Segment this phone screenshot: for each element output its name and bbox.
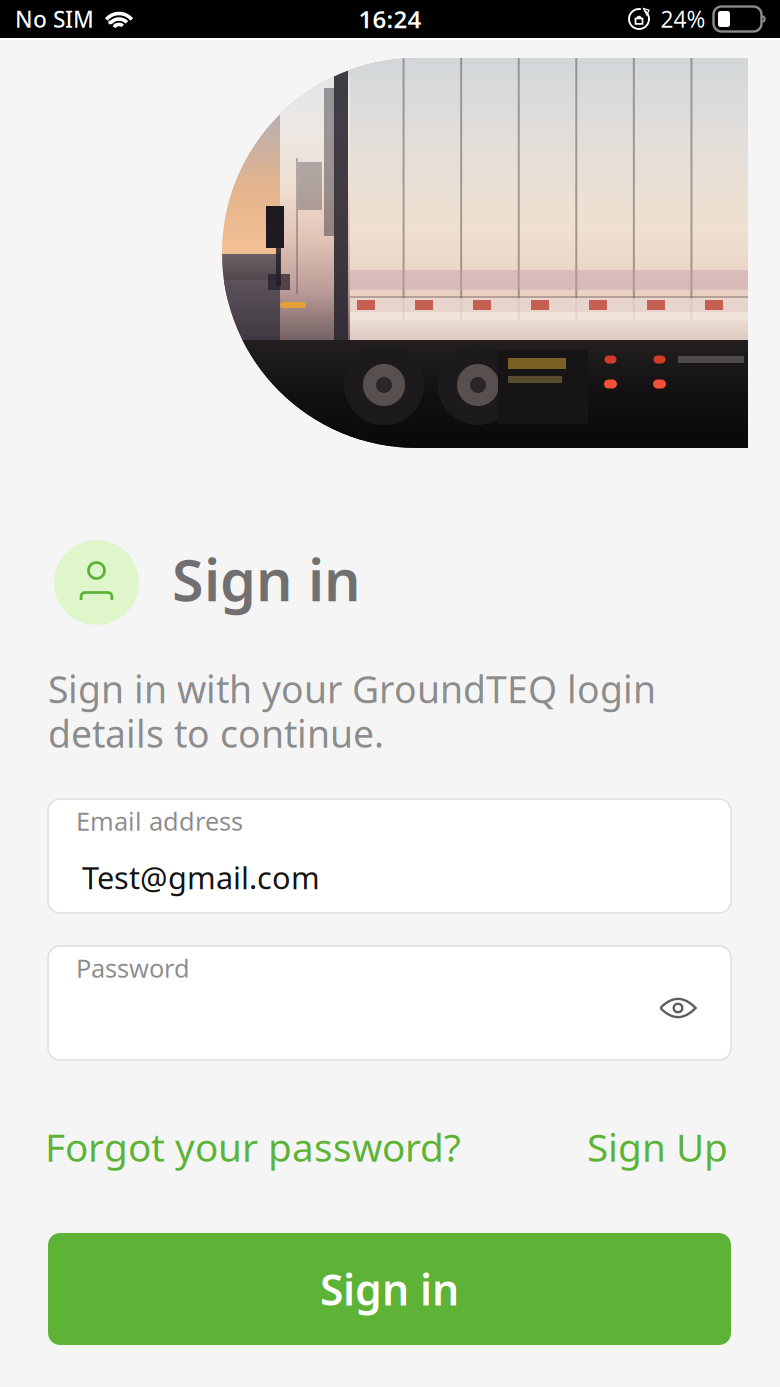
- button[interactable]: Sign in: [48, 1233, 731, 1345]
- staticText: Sign in: [172, 541, 361, 617]
- staticText: Password: [76, 951, 190, 985]
- staticText: 16:24: [358, 3, 421, 35]
- staticText: 24%: [660, 4, 705, 34]
- staticText: Sign in: [320, 1261, 459, 1317]
- button[interactable]: Show password: [48, 946, 697, 1022]
- button[interactable]: Forgot your password?: [45, 1121, 461, 1172]
- staticText: Email address: [76, 804, 243, 838]
- staticText: No SIM: [15, 4, 94, 34]
- staticText: Test@gmail.com: [82, 857, 320, 898]
- staticText: Forgot your password?: [45, 1121, 461, 1172]
- button[interactable]: Sign Up: [587, 1121, 728, 1172]
- staticText: Sign in with your GroundTEQ login detail…: [48, 664, 656, 758]
- staticText: Sign Up: [587, 1121, 728, 1172]
